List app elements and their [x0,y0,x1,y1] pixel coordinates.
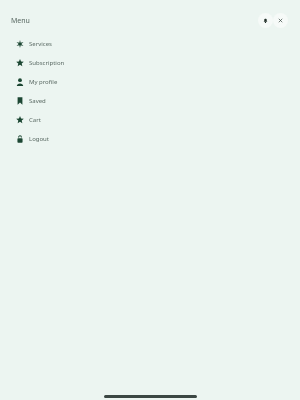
button[interactable]: Logout [0,129,300,148]
staticText: Subscription [29,59,65,67]
button[interactable]: Saved [0,91,300,110]
staticText: Services [29,40,52,48]
staticText: My profile [29,78,58,86]
staticText: Menu [11,16,30,26]
staticText: Cart [29,116,41,124]
staticText: Saved [29,97,46,105]
button[interactable]: Subscription [0,53,300,72]
button[interactable]: Cart [0,110,300,129]
button[interactable]: Services [0,34,300,53]
button[interactable]: My profile [0,72,300,91]
staticText: Logout [29,135,49,143]
button[interactable]: Close [273,13,288,28]
button[interactable]: Notifications [258,13,273,28]
